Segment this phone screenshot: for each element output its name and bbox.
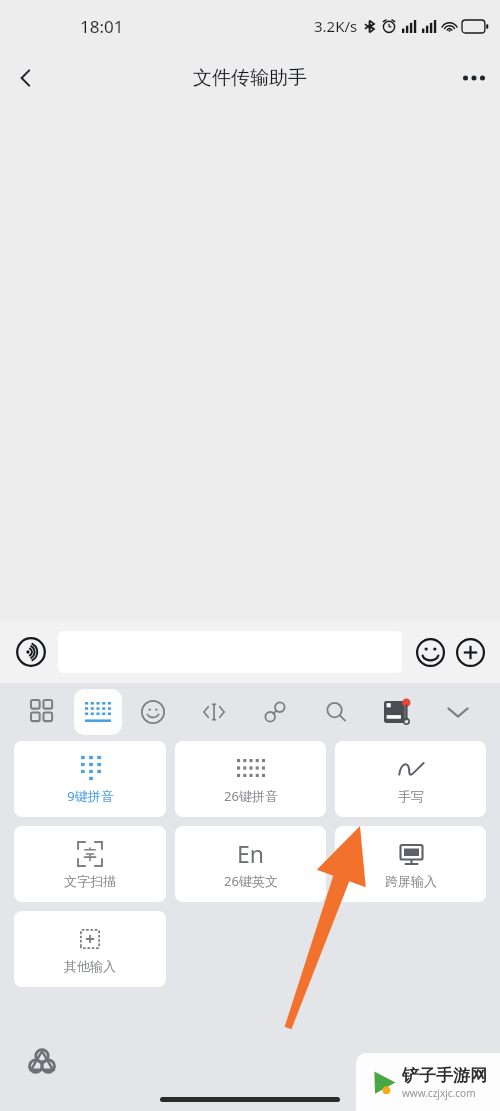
button[interactable]: 跨屏输入	[335, 826, 486, 902]
button[interactable]: Keyboard	[74, 689, 122, 735]
staticText: En	[237, 838, 265, 868]
button[interactable]: Search	[305, 689, 366, 735]
button[interactable]: More options	[448, 52, 500, 104]
button[interactable]: More functions	[450, 632, 490, 672]
staticText: 9键拼音	[67, 787, 114, 805]
button[interactable]: 其他输入	[14, 911, 166, 987]
staticText: 26键英文	[224, 872, 278, 890]
button[interactable]: Emoji	[410, 632, 450, 672]
button[interactable]: Cursor	[183, 689, 244, 735]
button[interactable]: 文字扫描	[14, 826, 166, 902]
button[interactable]: Apps	[12, 689, 74, 735]
staticText: 其他输入	[64, 958, 116, 974]
button[interactable]: En	[175, 826, 326, 902]
staticText: 文件传输助手	[193, 66, 307, 90]
staticText: 跨屏输入	[385, 873, 437, 889]
button[interactable]: Sogou logo	[22, 1041, 62, 1081]
staticText: 铲子手游网	[402, 1065, 487, 1086]
button[interactable]: Emoji	[122, 689, 183, 735]
button[interactable]: 26键拼音	[175, 741, 326, 817]
staticText: 26键拼音	[224, 787, 278, 805]
staticText: 文字扫描	[64, 873, 116, 889]
button[interactable]: Voice input	[10, 631, 52, 673]
staticText: 手写	[398, 788, 424, 804]
staticText: www.czjxjc.com	[402, 1086, 476, 1100]
button[interactable]: 手写	[335, 741, 486, 817]
button[interactable]: Back	[0, 52, 52, 104]
button[interactable]: Store	[366, 689, 427, 735]
button[interactable]: Clipboard	[244, 689, 305, 735]
staticText: 3.2K/s	[314, 16, 358, 36]
staticText: 18:01	[80, 15, 124, 38]
button[interactable]: Collapse keyboard	[427, 689, 488, 735]
button[interactable]: 9键拼音	[14, 741, 166, 817]
